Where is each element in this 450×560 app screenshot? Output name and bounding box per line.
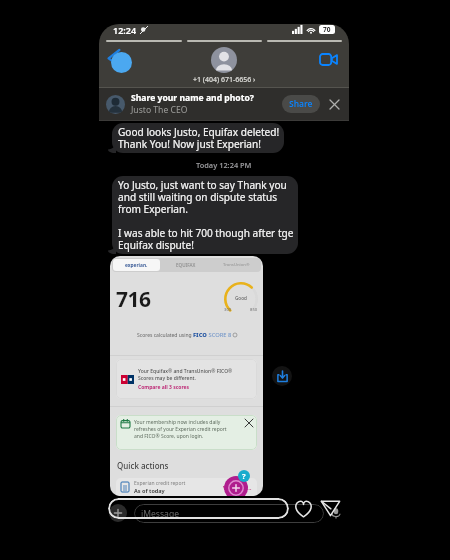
staticText: Share [289, 98, 313, 110]
button[interactable]: experian. [113, 259, 160, 271]
staticText: 12:24 [113, 24, 137, 36]
button[interactable]: Dictate [328, 505, 344, 521]
staticText: iMessage [141, 508, 180, 520]
staticText: EQUIFAX [176, 262, 196, 268]
staticText: Your Equifax® and TransUnion® FICO® [138, 368, 233, 375]
button[interactable]: Yo Justo, just want to say Thank you and… [112, 176, 298, 254]
button[interactable]: Share [319, 498, 341, 518]
button[interactable]: Like [293, 498, 314, 519]
staticText: ? [242, 471, 246, 481]
staticText: Experian credit report [134, 480, 186, 487]
button[interactable]: Experian credit report [116, 478, 257, 496]
button[interactable]: FaceTime video call [315, 49, 341, 69]
staticText: TransUnion® [223, 262, 250, 268]
button[interactable]: Help [238, 470, 250, 482]
staticText: Good looks Justo, Equifax deleted! Thank… [118, 125, 280, 151]
button[interactable]: Add attachment [109, 504, 127, 522]
button[interactable]: Good looks Justo, Equifax deleted! Thank… [112, 123, 284, 153]
staticText: experian. [125, 262, 148, 269]
staticText: Scores may be different. [138, 375, 196, 382]
staticText: Compare all 3 scores [138, 384, 190, 391]
staticText: Your membership now includes daily refre… [134, 419, 245, 440]
staticText: Justo The CEO [131, 104, 188, 116]
button[interactable] [108, 498, 289, 519]
button[interactable]: Save image [272, 366, 292, 386]
staticText: +1 (404) 671-6656 › [193, 75, 256, 85]
staticText: Yo Justo, just want to say Thank you and… [118, 178, 294, 252]
staticText: Scores calculated using [137, 332, 193, 339]
button[interactable]: Your Equifax® and TransUnion® FICO® [116, 359, 257, 399]
staticText: As of today [134, 487, 165, 494]
button[interactable]: Dismiss [325, 95, 343, 113]
staticText: 300 [224, 307, 232, 313]
staticText: View rep… [223, 484, 252, 491]
staticText: 716 [116, 285, 151, 314]
staticText: FICO [193, 331, 207, 339]
button[interactable]: EQUIFAX [161, 258, 211, 272]
button[interactable]: Close [245, 419, 253, 427]
button[interactable]: TransUnion® [211, 258, 261, 272]
staticText: Today 12:24 PM [196, 160, 252, 170]
staticText: Share your name and photo? [131, 92, 254, 104]
button[interactable]: Share [282, 95, 320, 113]
button[interactable]: Back [106, 49, 142, 77]
staticText: SCORE 8 [207, 331, 233, 339]
button[interactable]: Add [224, 476, 248, 496]
button[interactable]: iMessage [134, 504, 324, 523]
button[interactable]: Your membership now includes daily refre… [116, 415, 257, 450]
staticText: Good [235, 295, 247, 301]
staticText: 70 [323, 25, 331, 34]
staticText: 850 [250, 307, 258, 313]
staticText: Quick actions [117, 460, 169, 471]
